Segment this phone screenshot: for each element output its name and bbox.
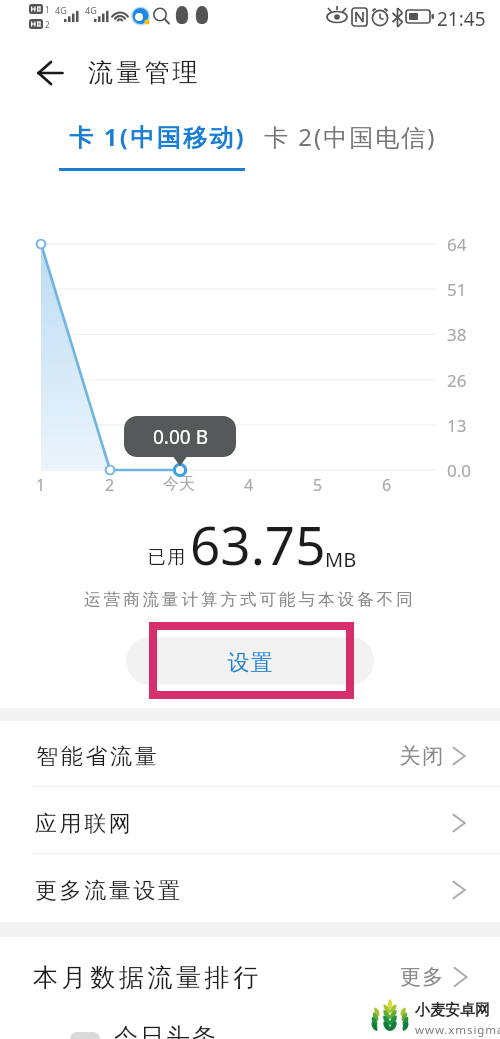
staticText: 本月数据流量排行 (33, 962, 262, 993)
staticText: 流量管理 (88, 57, 201, 88)
staticText: 51 (447, 278, 467, 301)
staticText: 4G (85, 4, 97, 16)
staticText: 0.0 (447, 459, 472, 482)
staticText: 关闭 (399, 743, 444, 769)
staticText: 2 (105, 474, 115, 496)
staticText: 63.75 (190, 508, 326, 580)
staticText: 已用 (147, 546, 186, 569)
button[interactable]: 智能省流量 (0, 720, 500, 786)
staticText: 2 (45, 19, 50, 30)
button[interactable]: 今日头条 (0, 1012, 500, 1039)
staticText: 卡 2(中国电信) (264, 120, 437, 153)
button[interactable]: 本月数据流量排行 (0, 939, 500, 1015)
staticText: MB (325, 546, 357, 573)
button[interactable]: 应用联网 (0, 787, 500, 853)
staticText: 更多流量设置 (35, 877, 183, 905)
button[interactable]: 更多流量设置 (0, 854, 500, 920)
staticText: 1 (36, 474, 46, 496)
staticText: 26 (447, 369, 467, 392)
staticText: www.xmsigma.com (415, 1022, 500, 1038)
button[interactable]: Back (27, 50, 73, 96)
staticText: 4G (55, 4, 67, 16)
staticText: 运营商流量计算方式可能与本设备不同 (84, 589, 416, 610)
button[interactable]: 设置 (126, 637, 374, 685)
staticText: 今天 (163, 474, 195, 494)
staticText: 卡 1(中国移动) (69, 120, 246, 153)
button[interactable]: 卡 1(中国移动) (53, 112, 261, 170)
staticText: 更多 (399, 964, 444, 990)
staticText: 21:45 (437, 6, 486, 32)
staticText: 智能省流量 (35, 743, 158, 771)
staticText: 38 (447, 323, 467, 346)
staticText: 设置 (227, 649, 273, 677)
staticText: 4 (244, 474, 254, 496)
staticText: 1 (45, 4, 50, 15)
staticText: 小麦安卓网 (415, 1001, 490, 1020)
staticText: 今日头条 (113, 1022, 217, 1039)
staticText: 0.00 B (153, 424, 208, 450)
staticText: 64 (447, 233, 467, 256)
staticText: 5 (313, 474, 323, 496)
staticText: 13 (447, 414, 467, 437)
staticText: 6 (382, 474, 392, 496)
button[interactable]: 卡 2(中国电信) (258, 112, 442, 170)
staticText: 应用联网 (35, 810, 134, 838)
